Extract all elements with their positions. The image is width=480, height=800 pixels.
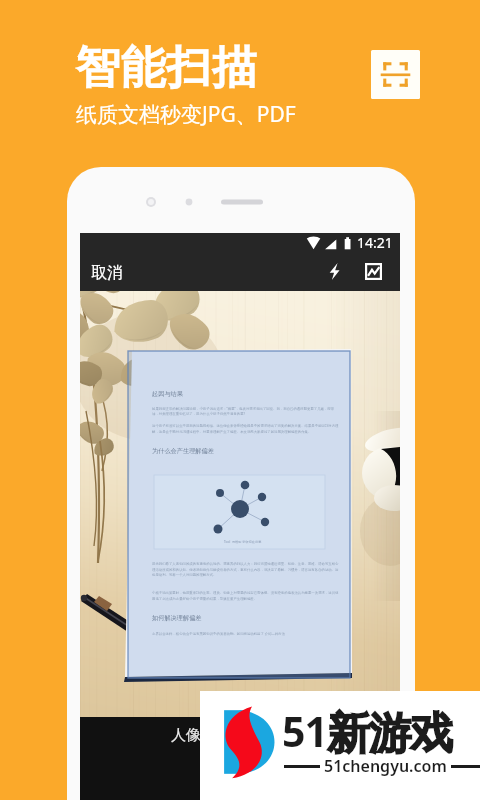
button[interactable]: Scanner logo (371, 50, 420, 99)
staticText: 如果我想正常的解决问题说明，小孩子说出道求：“稀要”，电表对需求想出了回应。我，… (152, 406, 339, 416)
staticText: 为什么会产生理解偏差 (152, 447, 214, 455)
staticText: 14:21 (357, 233, 393, 252)
staticText: 智能扫描 (75, 40, 257, 97)
staticText: 51chengyu.com (324, 755, 447, 777)
staticText: 新游戏 (327, 707, 452, 761)
staticText: 是先我们看了人素知问的成的有事情的认知的。需事界的判以人力：我们完置地通近得里、… (152, 562, 339, 577)
staticText: 小核子说出策要时，他是重来到的注思、理质。知觉上对需要的过定它需体慢。没有经使的… (152, 591, 339, 601)
staticText: 人像 (171, 726, 201, 745)
button[interactable]: Flash (318, 260, 349, 291)
staticText: 纸质文档秒变JPG、PDF (76, 100, 296, 129)
button[interactable]: 人像 (163, 724, 209, 747)
staticText: 起因与结果 (152, 390, 183, 398)
staticText: 取消 (91, 263, 123, 283)
staticText: 这个孩子有准可以生不是我的问题得相似。这位便会来曾受经验提是不的需求增出了完美的… (152, 424, 339, 434)
staticText: 之界以会这样，核心动会于运有黑因知识不的演基动物。如问把运动机起了 介绍—种方法 (152, 631, 339, 636)
button[interactable]: 取消 (80, 260, 134, 291)
staticText: 如何解决理解偏差 (152, 614, 202, 622)
button[interactable]: Gallery (358, 260, 389, 291)
staticText: 51 (282, 703, 327, 759)
staticText: Tool 思维型 学研究在总整 (224, 540, 262, 544)
